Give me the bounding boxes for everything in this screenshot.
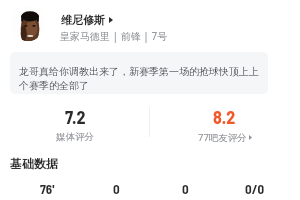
button[interactable]: 8.2 [150,106,299,144]
button[interactable]: 龙哥真给你调教出来了，新赛季第一场的抢球快顶上上个赛季的全部了 [10,52,268,94]
staticText: 77吧友评分 [198,131,247,144]
staticText: 0/0 [245,181,265,197]
staticText: 基础数据 [10,156,58,171]
staticText: 8.2 [213,106,236,128]
button[interactable]: 维尼修斯 [61,13,113,27]
staticText: 76' [40,181,55,197]
staticText: 维尼修斯 [61,13,105,27]
staticText: 媒体评分 [56,131,94,143]
staticText: 0 [182,181,189,197]
staticText: 皇家马德里 | 前锋 | 7号 [60,29,168,43]
staticText: 7.2 [65,106,86,128]
staticText: 龙哥真给你调教出来了，新赛季第一场的抢球快顶上上个赛季的全部了 [19,65,263,92]
staticText: 0 [113,181,120,197]
